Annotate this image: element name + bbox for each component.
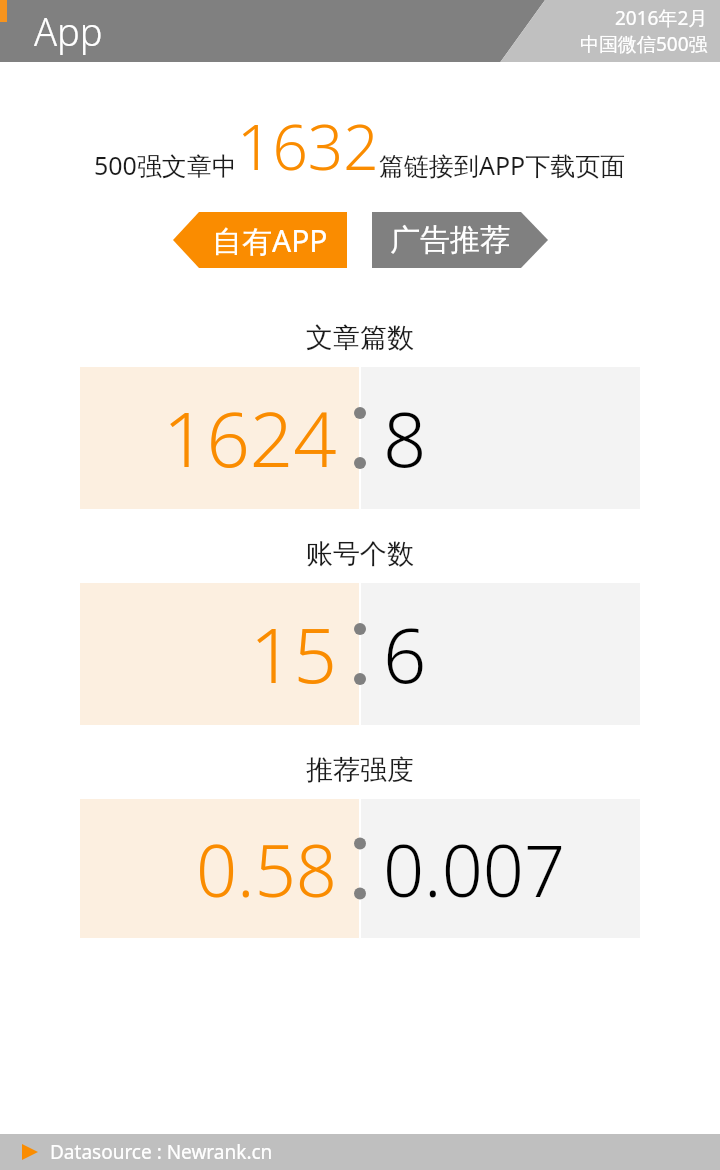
staticText: 自有APP [212, 220, 328, 261]
staticText: 6 [383, 602, 427, 706]
staticText: 8 [383, 386, 427, 490]
staticText: 1624 [163, 386, 337, 490]
button[interactable]: 1624 [80, 367, 640, 509]
staticText: Datasource : Newrank.cn [50, 1139, 273, 1165]
staticText: App [34, 5, 103, 57]
staticText: 账号个数 [306, 537, 414, 571]
button[interactable]: 自有APP [173, 212, 347, 268]
staticText: 篇链接到APP下载页面 [379, 148, 626, 182]
staticText: 0.58 [196, 820, 337, 918]
other: Play [22, 1144, 38, 1160]
staticText: 0.007 [383, 820, 566, 918]
staticText: 500强文章中 [94, 148, 237, 182]
staticText: 广告推荐 [390, 221, 510, 259]
staticText: 1632 [237, 104, 379, 188]
staticText: 文章篇数 [306, 321, 414, 355]
button[interactable]: 0.58 [80, 799, 640, 938]
button[interactable]: Play [0, 1134, 720, 1170]
button[interactable]: 15 [80, 583, 640, 725]
staticText: 推荐强度 [306, 753, 414, 787]
button[interactable]: 广告推荐 [372, 212, 548, 268]
staticText: 15 [250, 602, 337, 706]
staticText: 中国微信500强 [580, 31, 708, 57]
staticText: 2016年2月 [615, 5, 708, 31]
